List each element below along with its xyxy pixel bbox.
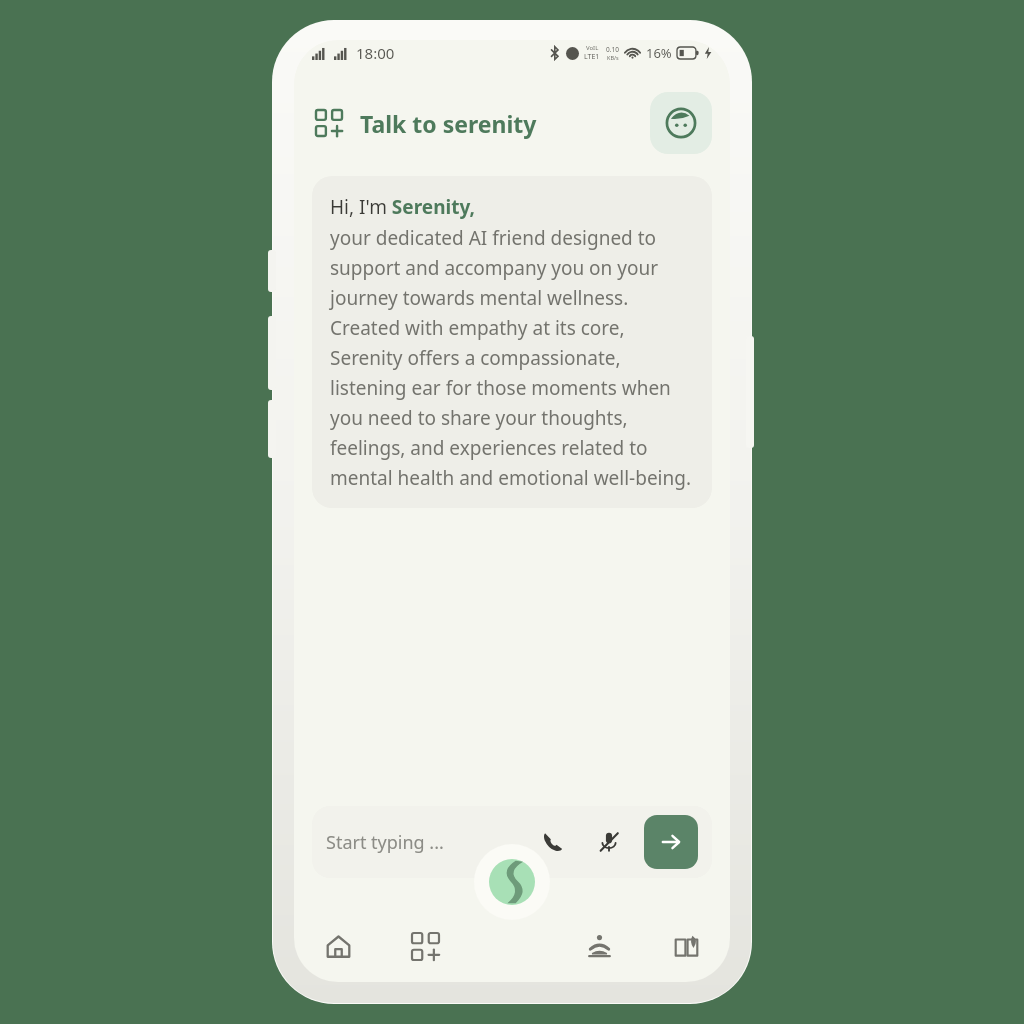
button[interactable]: Hi, I'm Serenity, your dedicated AI frie…	[312, 176, 712, 508]
button[interactable]: Call	[534, 823, 572, 861]
button[interactable]: Home	[294, 916, 382, 976]
staticText: 16%	[646, 44, 672, 62]
staticText: VoIL	[586, 44, 599, 52]
button[interactable]: Apps	[312, 106, 346, 140]
staticText: 0.10	[606, 45, 619, 54]
staticText: LTE1	[584, 52, 600, 62]
button[interactable]: Start typing ...	[312, 806, 712, 878]
button[interactable]: Send	[644, 815, 698, 869]
staticText: Hi, I'm Serenity, your dedicated AI frie…	[330, 194, 694, 490]
staticText: 18:00	[356, 43, 395, 63]
button[interactable]: Serenity	[474, 844, 550, 920]
staticText: Start typing ...	[326, 830, 444, 855]
button[interactable]: Apps	[382, 916, 469, 976]
button[interactable]: Mute microphone	[590, 823, 628, 861]
staticText: Talk to serenity	[360, 108, 537, 139]
button[interactable]: Profile	[650, 92, 712, 154]
button[interactable]: Meditate	[556, 916, 643, 976]
staticText: KB/s	[607, 54, 619, 61]
button[interactable]: Journal	[643, 916, 730, 976]
